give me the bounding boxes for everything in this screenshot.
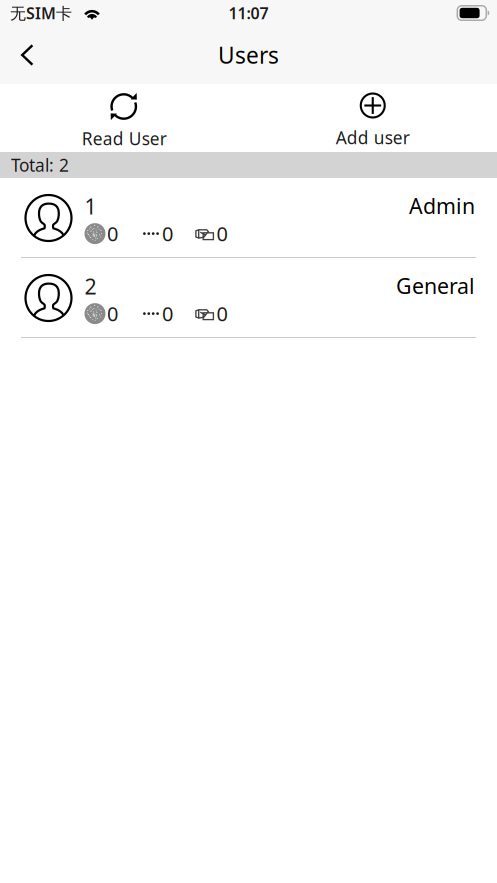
- staticText: 2: [84, 272, 96, 300]
- staticText: 0: [162, 300, 173, 327]
- staticText: General: [396, 271, 475, 300]
- staticText: Users: [218, 40, 279, 70]
- button[interactable]: 2: [0, 258, 497, 338]
- button[interactable]: 1: [0, 178, 497, 258]
- staticText: 0: [216, 220, 227, 247]
- button[interactable]: Back: [0, 32, 52, 78]
- staticText: Admin: [409, 191, 475, 220]
- staticText: Read User: [82, 127, 167, 150]
- staticText: 1: [84, 192, 96, 220]
- staticText: 0: [162, 220, 173, 247]
- staticText: 无SIM卡: [10, 2, 72, 24]
- button[interactable]: Read User: [0, 84, 248, 152]
- button[interactable]: Add user: [248, 84, 497, 152]
- staticText: Total: 2: [11, 153, 69, 176]
- staticText: 11:07: [228, 2, 268, 24]
- staticText: 0: [216, 300, 227, 327]
- staticText: 0: [107, 300, 118, 327]
- staticText: 0: [107, 220, 118, 247]
- staticText: Add user: [336, 126, 410, 149]
